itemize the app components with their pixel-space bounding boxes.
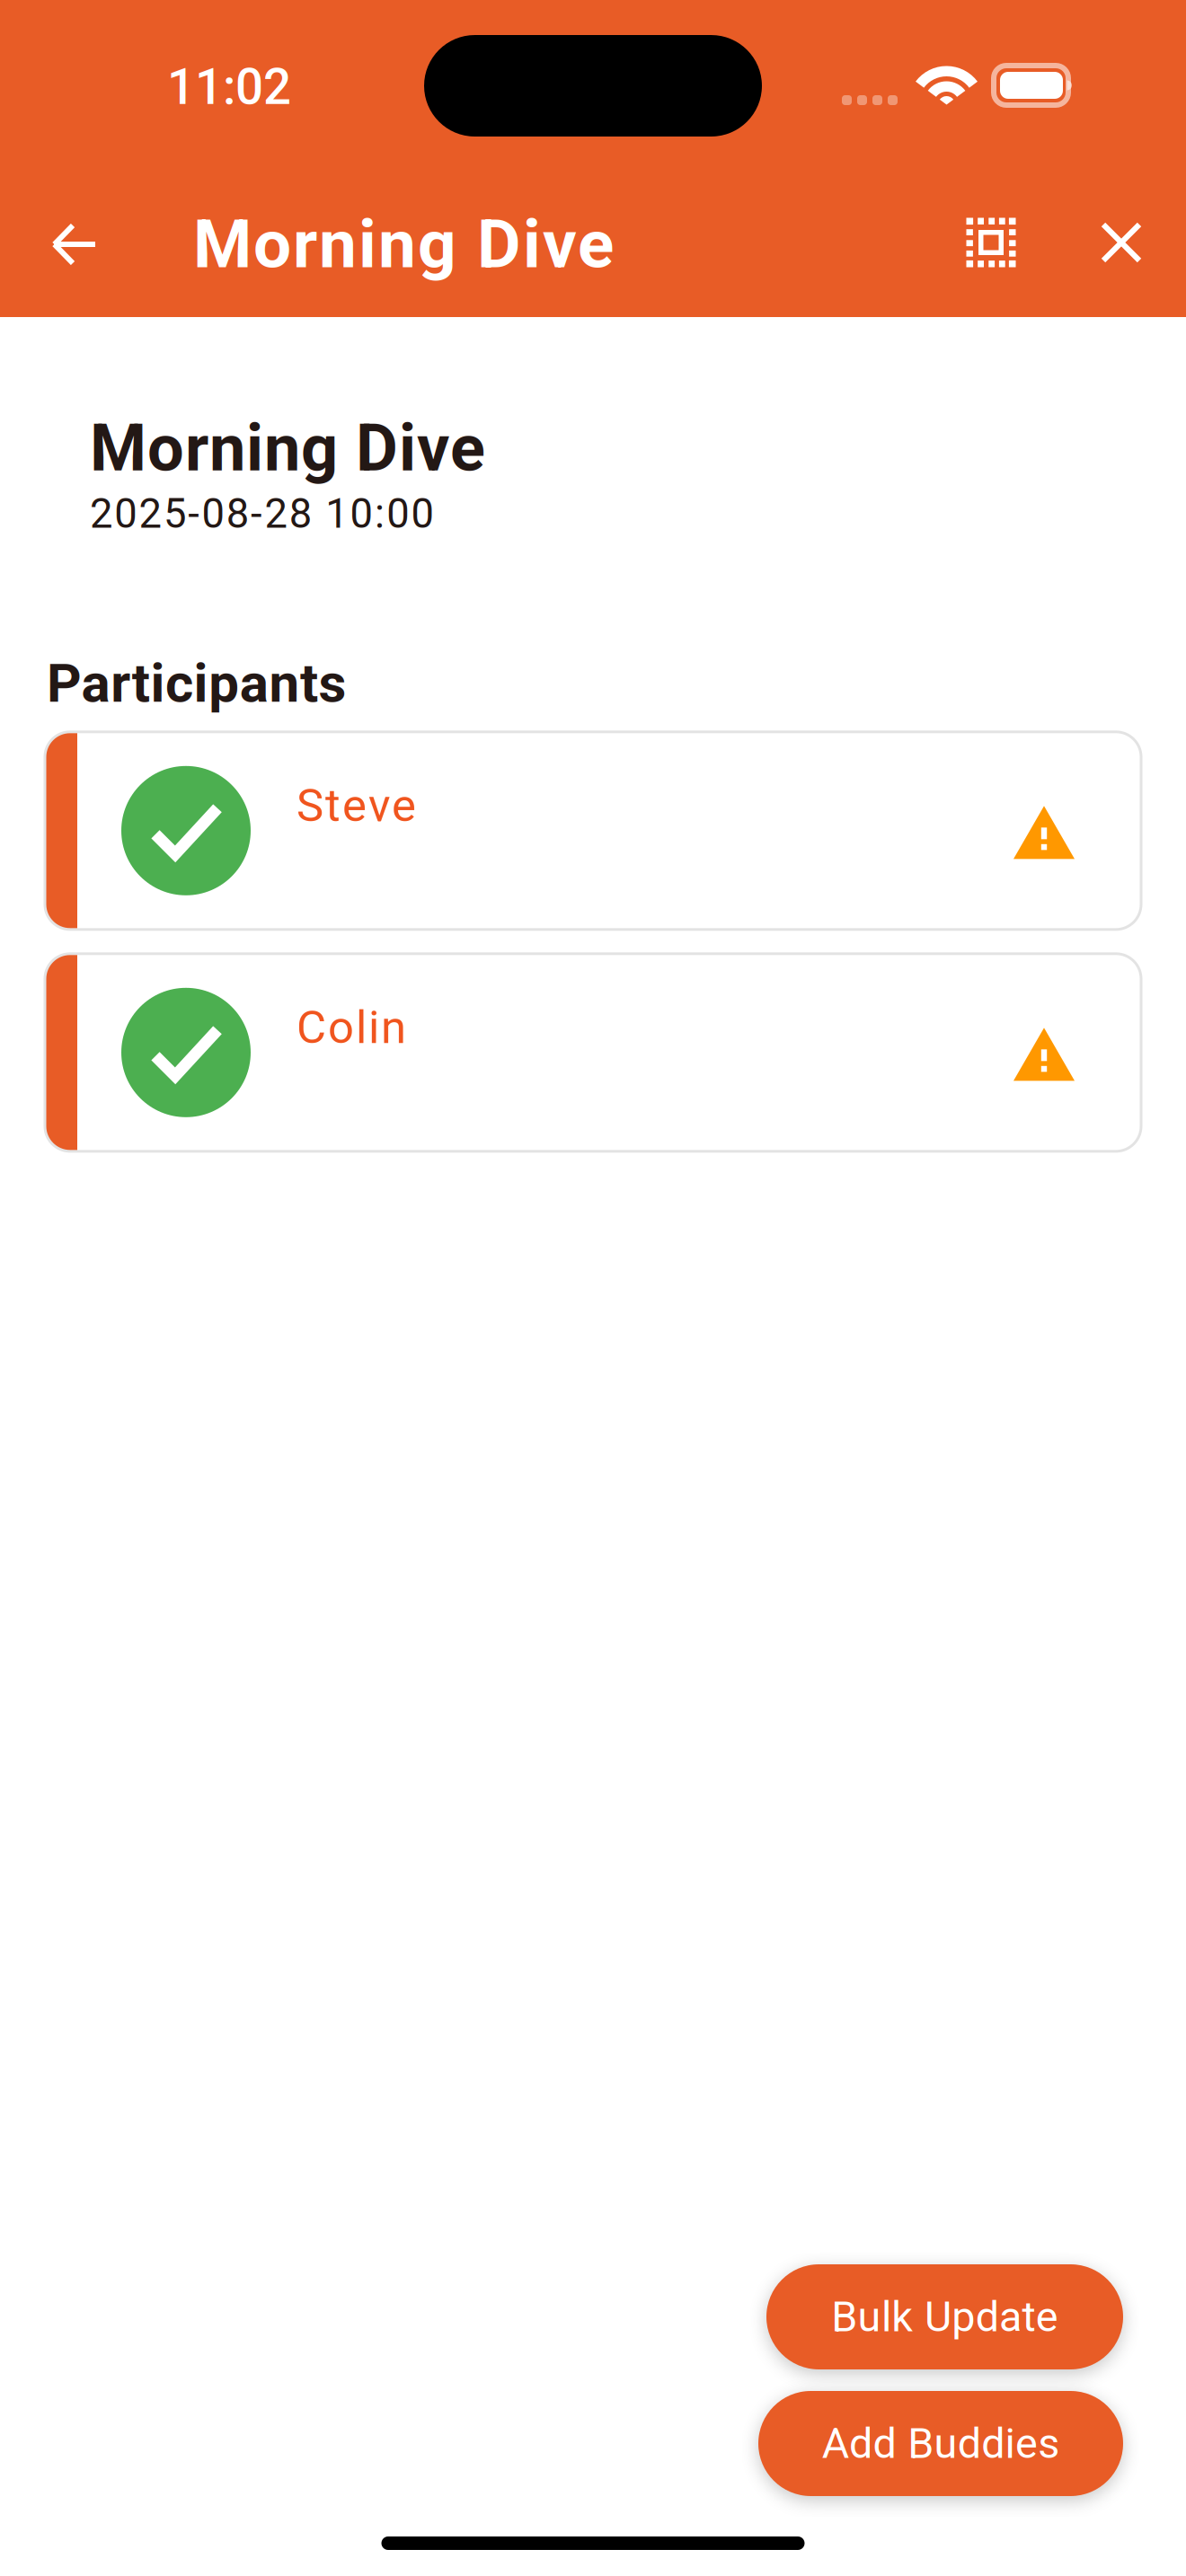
button[interactable]: Colin (45, 954, 1141, 1151)
staticText: Add Buddies (822, 2419, 1060, 2468)
staticText: 11:02 (167, 58, 291, 116)
staticText: Colin (296, 1001, 406, 1054)
button[interactable]: Bulk Update (766, 2264, 1123, 2369)
button[interactable]: Add Buddies (758, 2391, 1123, 2496)
staticText: Participants (47, 652, 346, 715)
staticText: Steve (296, 779, 416, 832)
staticText: Morning Dive (90, 410, 485, 486)
button[interactable]: Close (1063, 184, 1180, 301)
staticText: Morning Dive (193, 205, 614, 284)
button[interactable]: Steve (45, 732, 1141, 929)
staticText: 2025-08-28 10:00 (90, 490, 434, 538)
button[interactable]: Back (16, 186, 133, 303)
button[interactable]: Select all (933, 184, 1049, 301)
staticText: Bulk Update (831, 2292, 1058, 2341)
